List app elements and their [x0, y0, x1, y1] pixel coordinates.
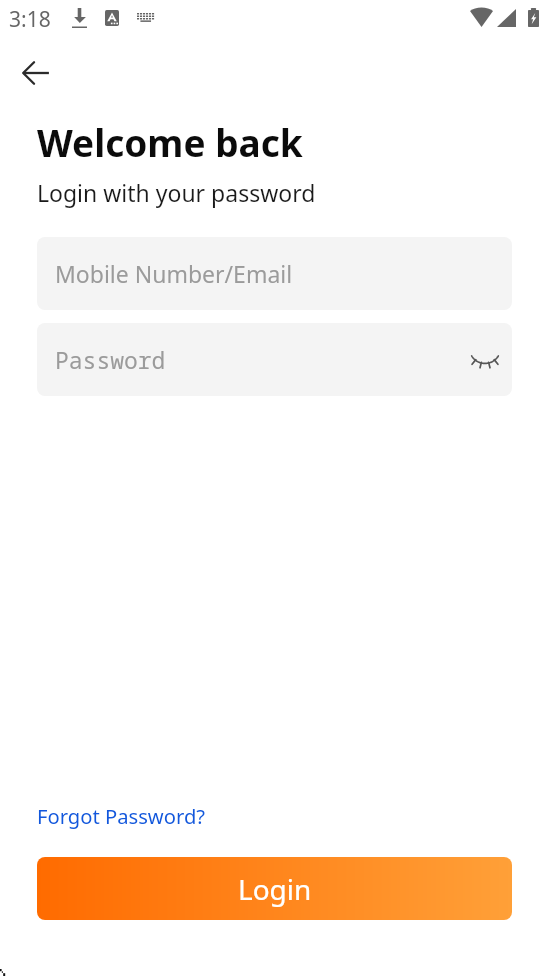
staticText: Forgot Password? — [37, 802, 206, 830]
button[interactable]: Mobile Number/Email — [37, 237, 512, 310]
staticText: Login with your password — [37, 177, 316, 208]
button[interactable]: Back — [12, 49, 59, 96]
button[interactable]: Show password — [463, 338, 507, 382]
staticText: Mobile Number/Email — [55, 258, 293, 289]
button[interactable]: Forgot Password? — [37, 798, 206, 834]
button[interactable]: Password — [37, 323, 512, 396]
staticText: Welcome back — [37, 117, 303, 167]
staticText: Password — [55, 344, 166, 375]
staticText: 3:18 — [9, 5, 51, 34]
button[interactable]: Login — [37, 857, 512, 920]
staticText: Login — [238, 870, 312, 908]
